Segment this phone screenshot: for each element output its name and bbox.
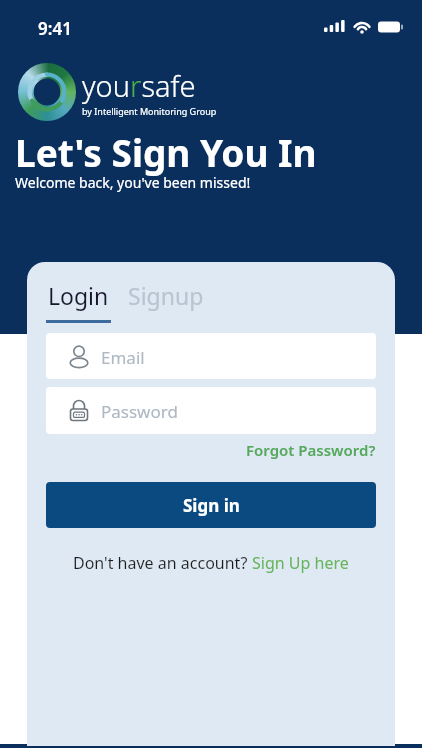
button[interactable]: Signup: [128, 280, 204, 311]
staticText: Login: [48, 280, 109, 311]
staticText: Signup: [128, 280, 204, 311]
button[interactable]: Login: [48, 280, 109, 311]
button[interactable]: Sign Up here: [252, 552, 349, 574]
staticText: Let's Sign You In: [15, 127, 317, 177]
staticText: Sign in: [183, 494, 240, 517]
staticText: Don't have an account?: [73, 552, 252, 574]
staticText: 9:41: [38, 17, 72, 40]
button[interactable]: Password: [46, 387, 376, 434]
staticText: by Intelligent Monitoring Group: [82, 105, 217, 117]
button[interactable]: Forgot Password?: [246, 440, 376, 460]
staticText: Forgot Password?: [246, 440, 376, 460]
staticText: yoursafe: [82, 66, 196, 105]
staticText: Sign Up here: [252, 552, 349, 574]
button[interactable]: Email: [46, 333, 376, 379]
button[interactable]: Sign in: [46, 482, 376, 528]
staticText: Email: [101, 346, 145, 369]
staticText: Welcome back, you've been missed!: [15, 173, 251, 192]
staticText: Password: [101, 400, 178, 423]
